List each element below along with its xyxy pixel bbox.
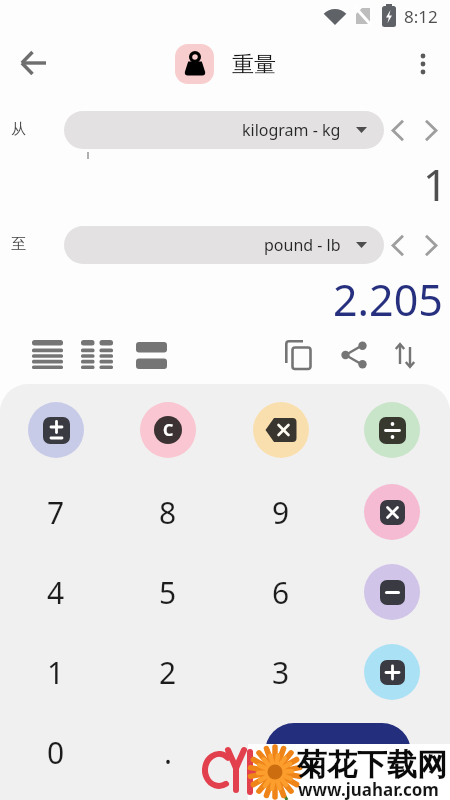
button[interactable] [131,335,171,375]
button[interactable]: 7 [28,484,84,540]
button[interactable] [364,644,420,700]
button[interactable] [77,335,117,375]
button[interactable]: 8 [140,484,196,540]
button[interactable] [28,402,84,458]
button[interactable]: 3 [253,644,309,700]
button[interactable]: 9 [253,484,309,540]
staticText: 3 [272,652,290,693]
button[interactable] [265,723,411,781]
staticText: 重量 [232,51,276,79]
staticText: 8:12 [404,5,438,28]
staticText: 1 [423,155,448,205]
button[interactable] [364,484,420,540]
button[interactable] [382,230,412,260]
button[interactable] [416,230,446,260]
button[interactable] [253,402,309,458]
staticText: 8 [159,492,177,533]
staticText: 2.205 [333,270,443,320]
button[interactable]: kilogram - kg [64,111,384,149]
button[interactable] [14,43,54,83]
staticText: 从 [11,120,26,139]
button[interactable] [364,402,420,458]
button[interactable]: pound - lb [64,226,384,264]
button[interactable]: 6 [253,564,309,620]
button[interactable] [364,564,420,620]
button[interactable] [27,335,67,375]
button[interactable]: . [140,724,196,780]
button[interactable] [416,115,446,145]
staticText: www.juahar.com [298,778,439,800]
staticText: 5 [159,572,177,613]
button[interactable] [334,335,374,375]
staticText: C [163,419,174,441]
button[interactable]: 4 [28,564,84,620]
button[interactable]: 1 [28,644,84,700]
button[interactable] [404,45,442,83]
button[interactable] [278,335,318,375]
button[interactable]: C [140,402,196,458]
button[interactable]: 5 [140,564,196,620]
staticText: 4 [47,572,65,613]
staticText: 1 [47,652,65,693]
staticText: 7 [47,492,65,533]
staticText: 至 [11,235,26,254]
button[interactable] [385,335,425,375]
staticText: . [164,732,173,773]
staticText: pound - lb [264,234,341,256]
staticText: 2 [159,652,177,693]
staticText: 9 [272,492,290,533]
staticText: kilogram - kg [242,119,341,141]
staticText: 0 [47,732,65,773]
button[interactable]: 0 [28,724,84,780]
staticText: 6 [272,572,290,613]
button[interactable]: 2 [140,644,196,700]
staticText: 菊花下载网 [297,746,447,784]
button[interactable] [382,115,412,145]
